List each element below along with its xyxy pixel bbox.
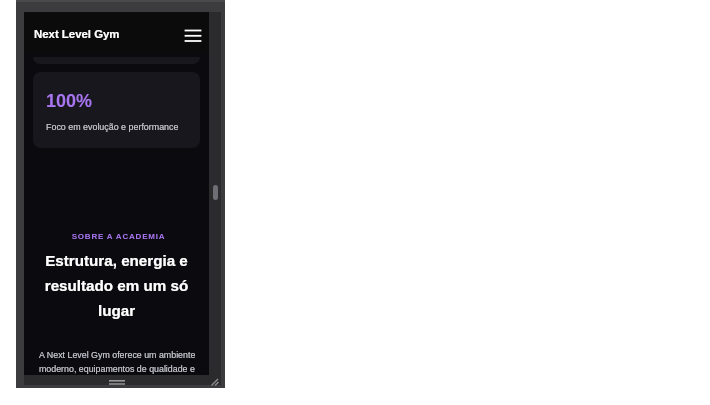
- staticText: A Next Level Gym oferece um ambiente mod…: [39, 350, 201, 375]
- button[interactable]: Next Level Gym: [34, 28, 120, 41]
- button[interactable]: Scroll page: [213, 185, 218, 200]
- staticText: 100%: [46, 91, 93, 111]
- staticText: Foco em evolução e performance: [46, 122, 179, 132]
- button[interactable]: Open navigation menu: [184, 22, 202, 40]
- staticText: Estrutura, energia e resultado em um só …: [42, 252, 191, 319]
- button[interactable]: 100%: [33, 72, 200, 148]
- button[interactable]: SOBRE A ACADEMIA: [26, 232, 209, 241]
